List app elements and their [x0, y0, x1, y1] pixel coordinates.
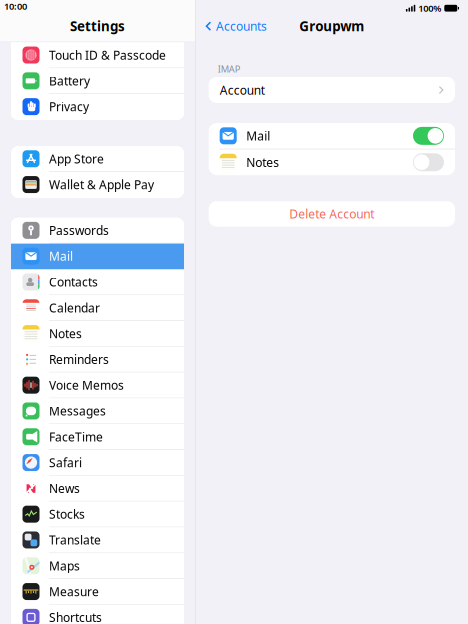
staticText: Accounts — [216, 18, 267, 34]
button[interactable]: Privacy — [11, 94, 184, 120]
button[interactable]: Calendar — [11, 295, 184, 321]
staticText: FaceTime — [49, 429, 103, 445]
button[interactable]: Contacts — [11, 269, 184, 295]
staticText: Notes — [49, 326, 82, 341]
button[interactable]: Maps — [11, 553, 184, 579]
button[interactable]: Translate — [11, 527, 184, 553]
button[interactable]: Touch ID & Passcode — [11, 42, 184, 68]
staticText: News — [49, 480, 80, 496]
staticText: Reminders — [49, 351, 109, 367]
staticText: Settings — [70, 17, 125, 35]
button[interactable]: News — [11, 476, 184, 502]
staticText: Measure — [49, 584, 99, 599]
staticText: Stocks — [49, 506, 85, 522]
button[interactable]: Messages — [11, 398, 184, 424]
button[interactable]: App Store — [11, 146, 184, 172]
staticText: Delete Account — [289, 206, 374, 222]
staticText: Touch ID & Passcode — [49, 47, 166, 63]
staticText: Translate — [49, 532, 101, 548]
staticText: Battery — [49, 73, 90, 89]
staticText: IMAP — [218, 63, 241, 75]
staticText: Messages — [49, 403, 106, 419]
staticText: Contacts — [49, 274, 98, 290]
button[interactable]: Measure — [11, 579, 184, 605]
button[interactable]: Stocks — [11, 502, 184, 527]
button[interactable]: Wallet & Apple Pay — [11, 172, 184, 198]
staticText: Safari — [49, 455, 82, 470]
staticText: 10:00 — [4, 0, 27, 12]
button[interactable]: FaceTime — [11, 424, 184, 450]
staticText: Calendar — [49, 300, 100, 316]
button[interactable]: Reminders — [11, 347, 184, 373]
button[interactable]: Voice Memos — [11, 373, 184, 398]
button[interactable]: Mail — [11, 244, 184, 269]
button[interactable]: Accounts — [206, 18, 267, 34]
button[interactable]: Notes — [11, 321, 184, 347]
staticText: Mail — [246, 128, 270, 144]
button[interactable]: Shortcuts — [11, 605, 184, 624]
staticText: Account — [220, 82, 265, 98]
staticText: Wallet & Apple Pay — [49, 177, 154, 192]
staticText: 100% — [418, 2, 441, 14]
button[interactable]: Notes toggle — [413, 153, 444, 171]
button[interactable]: Delete Account — [209, 201, 455, 227]
button[interactable]: Passwords — [11, 218, 184, 244]
button[interactable]: Account — [209, 77, 455, 103]
button[interactable]: Battery — [11, 68, 184, 94]
staticText: Shortcuts — [49, 609, 102, 624]
staticText: App Store — [49, 151, 104, 167]
staticText: Passwords — [49, 222, 109, 238]
button[interactable]: Mail toggle — [413, 127, 444, 145]
staticText: Privacy — [49, 99, 89, 115]
staticText: Notes — [246, 154, 279, 170]
button[interactable]: Safari — [11, 450, 184, 476]
staticText: Maps — [49, 558, 80, 574]
staticText: Voice Memos — [49, 377, 124, 393]
staticText: Groupwm — [299, 17, 364, 35]
staticText: Mail — [49, 248, 73, 264]
